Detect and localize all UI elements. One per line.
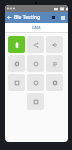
button[interactable]: Bluetooth <box>49 13 58 22</box>
button[interactable]: DATA <box>5 23 68 32</box>
button[interactable]: Share <box>27 36 44 53</box>
button[interactable]: Settings <box>8 55 25 72</box>
button[interactable]: Power <box>27 55 44 72</box>
button[interactable]: Back <box>5 13 14 22</box>
button[interactable]: Tune <box>46 74 63 91</box>
button[interactable]: Info <box>8 74 25 91</box>
button[interactable]: More options <box>58 13 67 22</box>
button[interactable]: Battery <box>8 36 25 53</box>
staticText: Ble Testing <box>14 14 41 21</box>
button[interactable]: Device <box>27 93 44 110</box>
button[interactable]: Record <box>27 74 44 91</box>
button[interactable]: Speaker <box>46 36 63 53</box>
staticText: DATA <box>32 25 41 30</box>
button[interactable]: List <box>46 55 63 72</box>
